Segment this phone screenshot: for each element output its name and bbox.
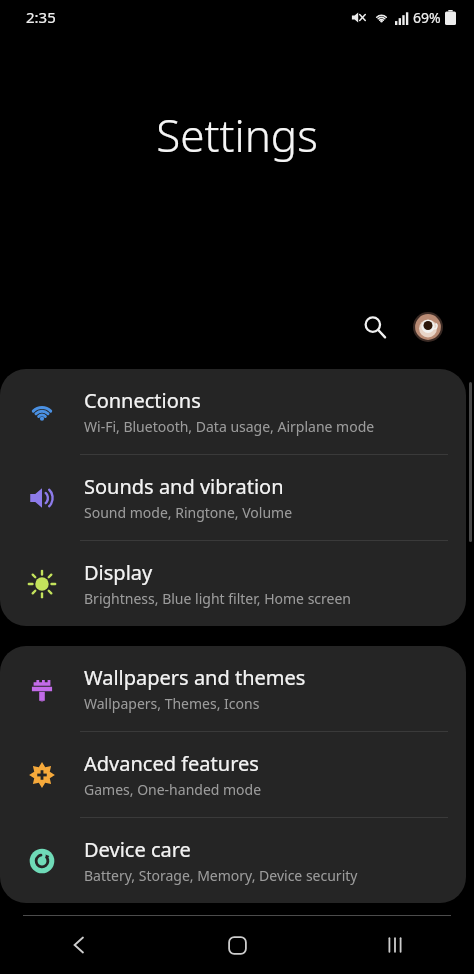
staticText: Wallpapers and themes <box>84 664 306 691</box>
staticText: Advanced features <box>84 750 259 777</box>
button[interactable]: Search <box>352 304 398 350</box>
staticText: Wallpapers, Themes, Icons <box>84 694 260 713</box>
button[interactable]: Back <box>0 916 158 974</box>
staticText: Connections <box>84 387 201 414</box>
button[interactable]: Wallpapers and themes <box>0 646 466 731</box>
staticText: Games, One-handed mode <box>84 780 262 799</box>
button[interactable]: Account <box>406 305 450 349</box>
staticText: Sounds and vibration <box>84 473 284 500</box>
staticText: Sound mode, Ringtone, Volume <box>84 503 293 522</box>
button[interactable]: Advanced features <box>0 732 466 817</box>
staticText: Display <box>84 559 153 586</box>
staticText: Device care <box>84 836 191 863</box>
button[interactable]: Sounds and vibration <box>0 455 466 540</box>
staticText: 69% <box>413 8 441 27</box>
staticText: Wi-Fi, Bluetooth, Data usage, Airplane m… <box>84 417 375 436</box>
button[interactable]: Connections <box>0 369 466 454</box>
button[interactable]: Recents <box>316 916 474 974</box>
staticText: Battery, Storage, Memory, Device securit… <box>84 866 358 885</box>
button[interactable]: Home <box>158 916 316 974</box>
staticText: Brightness, Blue light filter, Home scre… <box>84 589 352 608</box>
button[interactable]: Display <box>0 541 466 626</box>
staticText: Settings <box>156 105 318 165</box>
button[interactable]: Device care <box>0 818 466 903</box>
staticText: 2:35 <box>26 7 56 27</box>
